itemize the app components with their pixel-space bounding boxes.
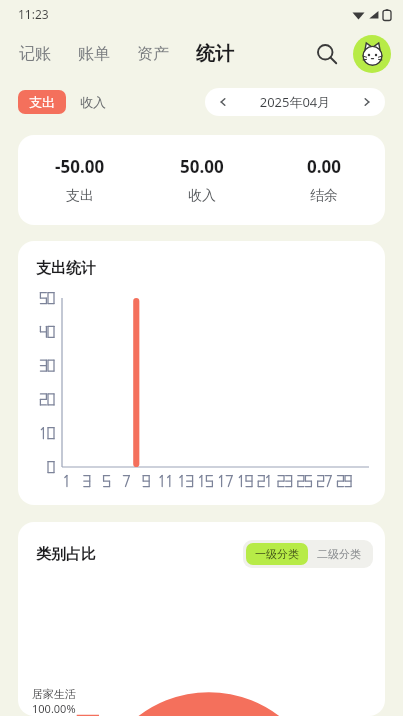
staticText: 统计	[196, 42, 234, 66]
button[interactable]: 记账	[18, 40, 52, 68]
button[interactable]: 二级分类	[308, 543, 370, 565]
staticText: 居家生活	[32, 687, 76, 701]
staticText: 100.00%	[32, 701, 76, 716]
button[interactable]: Search	[307, 34, 347, 74]
staticText: 二级分类	[317, 547, 361, 561]
button[interactable]: Previous month	[205, 88, 241, 116]
staticText: 资产	[137, 44, 169, 64]
staticText: 收入	[80, 94, 106, 110]
staticText: 11:23	[18, 6, 49, 22]
button[interactable]: 资产	[136, 40, 170, 68]
staticText: 记账	[19, 44, 51, 64]
staticText: 支出	[66, 187, 94, 205]
staticText: 2025年04月	[241, 93, 349, 111]
staticText: 支出统计	[36, 259, 96, 278]
staticText: 账单	[78, 44, 110, 64]
staticText: 类别占比	[36, 545, 96, 564]
button[interactable]: -50.00	[18, 135, 385, 225]
button[interactable]: 账单	[77, 40, 111, 68]
staticText: 50.00	[180, 155, 224, 178]
staticText: -50.00	[55, 155, 105, 178]
staticText: 支出	[29, 94, 55, 110]
staticText: 收入	[188, 187, 216, 205]
staticText: 0.00	[307, 155, 341, 178]
button[interactable]: Next month	[349, 88, 385, 116]
button[interactable]: 支出	[18, 90, 66, 114]
staticText: 结余	[310, 187, 338, 205]
staticText: 一级分类	[255, 547, 299, 561]
button[interactable]: 统计	[195, 38, 235, 70]
button[interactable]: 一级分类	[246, 543, 308, 565]
button[interactable]: 收入	[76, 90, 110, 114]
button[interactable]: Profile	[353, 35, 391, 73]
